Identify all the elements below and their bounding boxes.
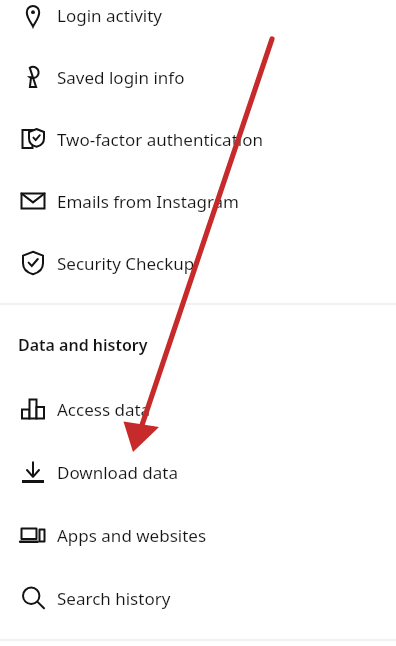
staticText: Two-factor authentication [57,128,263,151]
other: Annotation arrow [0,0,396,646]
staticText: Data and history [18,334,148,356]
button[interactable]: Emails from Instagram [0,170,396,232]
button[interactable]: Login activity [0,0,396,46]
staticText: Emails from Instagram [57,190,240,213]
staticText: Download data [57,461,178,484]
staticText: Login activity [57,4,163,27]
button[interactable]: Saved login info [0,46,396,108]
staticText: Search history [57,587,171,610]
button[interactable]: Access data [0,378,396,440]
staticText: Access data [57,398,151,421]
button[interactable]: Security Checkup [0,232,396,294]
button[interactable]: Download data [0,441,396,503]
button[interactable]: Two-factor authentication [0,108,396,170]
button[interactable]: Apps and websites [0,504,396,566]
staticText: Security Checkup [57,252,195,275]
staticText: Apps and websites [57,524,207,547]
staticText: Saved login info [57,66,185,89]
button[interactable]: Search history [0,567,396,629]
